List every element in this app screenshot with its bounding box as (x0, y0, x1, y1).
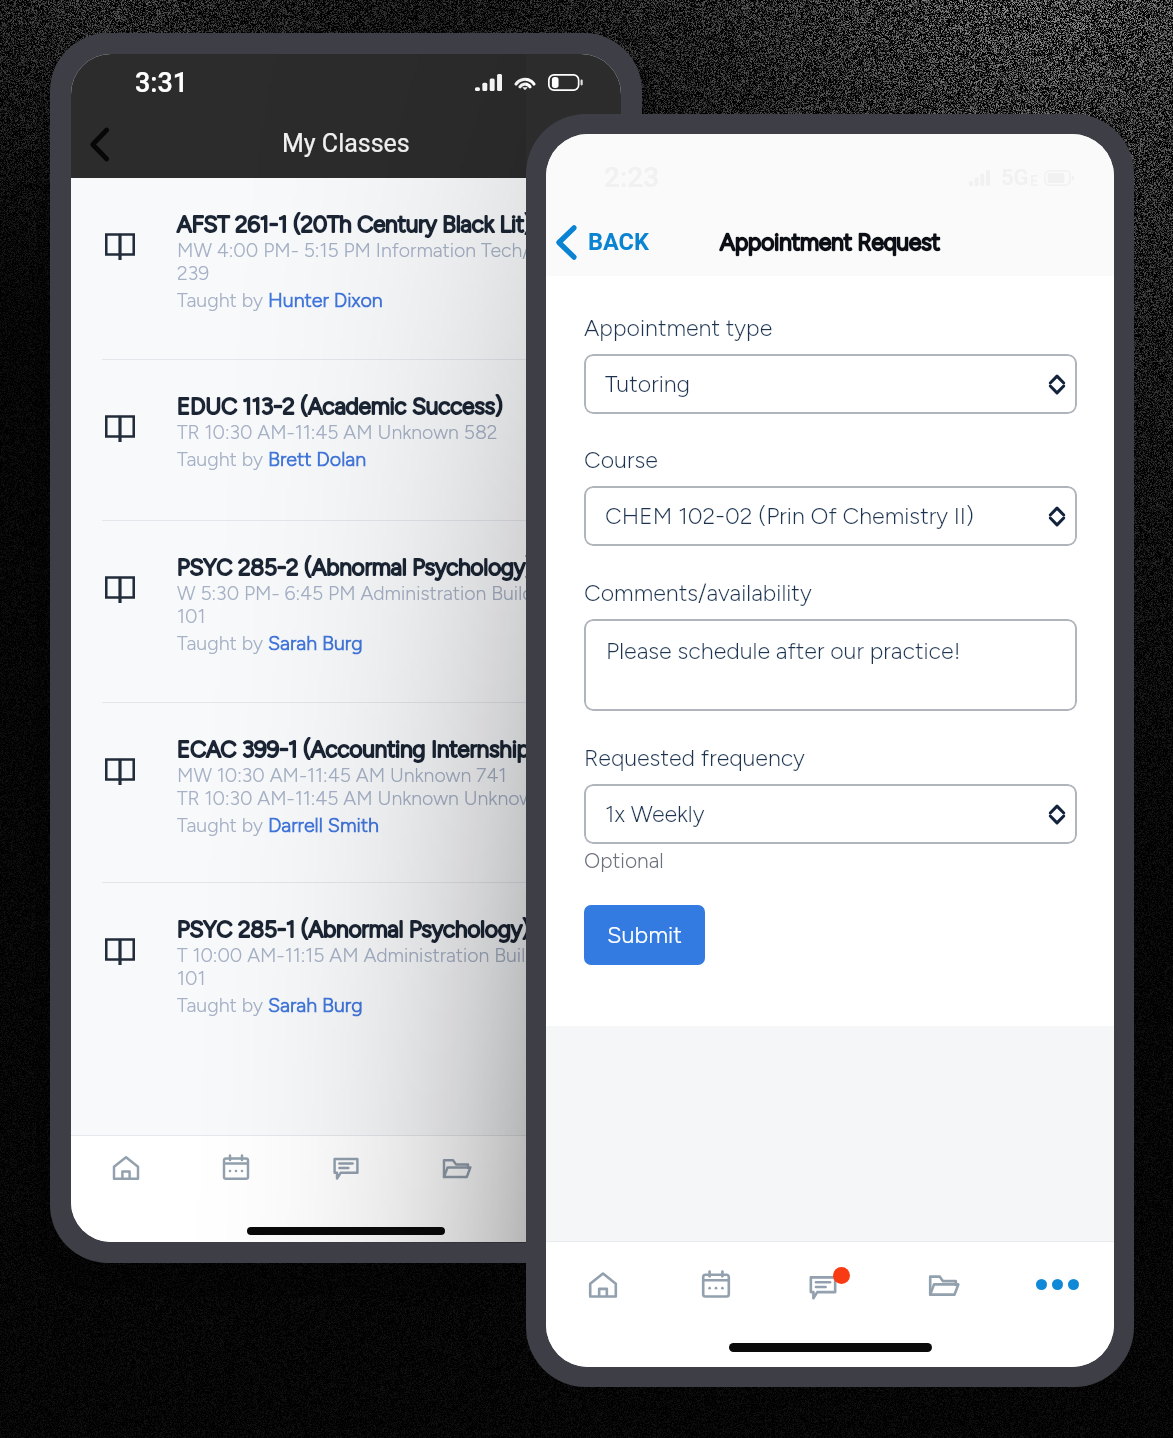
staticText: Appointment type (584, 314, 773, 342)
button[interactable]: More (1000, 1242, 1114, 1327)
button[interactable]: Tutoring (584, 354, 1077, 414)
button[interactable]: PSYC 285-2 (Abnormal Psychology) (71, 521, 621, 702)
staticText: AFST 261-1 (20Th Century Black Lit) (177, 211, 532, 238)
staticText: Appointment Request (720, 229, 941, 256)
staticText: Taught by Sarah Burg (177, 631, 363, 655)
staticText: E (1030, 173, 1038, 189)
button[interactable]: Files (886, 1242, 1000, 1327)
staticText: My Classes (282, 129, 410, 158)
staticText: 101 (177, 966, 206, 989)
button[interactable]: More (511, 1136, 621, 1200)
staticText: TR 10:30 AM-11:45 AM Unknown 582 (177, 420, 498, 443)
staticText: 239 (177, 261, 210, 284)
staticText: Optional (584, 848, 664, 873)
button[interactable]: BACK (556, 205, 649, 276)
staticText: Taught by Darrell Smith (177, 813, 380, 837)
staticText: AFST 261-1 (20Th Century Black Lit) (177, 211, 532, 238)
button[interactable]: Messages (772, 1242, 886, 1327)
button[interactable]: Files (401, 1136, 511, 1200)
staticText: PSYC 285-2 (Abnormal Psychology) (177, 554, 533, 581)
staticText: Appointment Request (720, 229, 941, 256)
button[interactable]: Please schedule after our practice! (584, 619, 1077, 711)
button[interactable]: Home (546, 1242, 659, 1327)
button[interactable]: 1x Weekly (584, 784, 1077, 844)
button[interactable]: Submit (584, 905, 705, 965)
staticText: PSYC 285-1 (Abnormal Psychology) (177, 916, 530, 943)
staticText: PSYC 285-2 (Abnormal Psychology) (177, 554, 533, 581)
staticText: 2:23 (604, 161, 660, 194)
button[interactable]: Calendar (659, 1242, 772, 1327)
staticText: BACK (588, 228, 649, 256)
staticText: Taught by Sarah Burg (177, 993, 363, 1017)
staticText: Taught by Brett Dolan (177, 447, 367, 471)
staticText: W 5:30 PM- 6:45 PM Administration Build (177, 581, 534, 604)
staticText: Tutoring (605, 370, 691, 398)
staticText: Please schedule after our practice! (606, 637, 961, 665)
button[interactable]: Back (71, 111, 128, 178)
staticText: TR 10:30 AM-11:45 AM Unknown Unknown (177, 786, 546, 809)
button[interactable]: Messages (291, 1136, 401, 1200)
button[interactable]: Home (71, 1136, 181, 1200)
button[interactable]: PSYC 285-1 (Abnormal Psychology) (71, 883, 621, 1083)
button[interactable]: EDUC 113-2 (Academic Success) (71, 360, 621, 520)
staticText: EDUC 113-2 (Academic Success) (177, 393, 503, 420)
staticText: Submit (607, 921, 682, 949)
staticText: MW 4:00 PM- 5:15 PM Information Tech/ (177, 238, 530, 261)
button[interactable]: CHEM 102-02 (Prin Of Chemistry II) (584, 486, 1077, 546)
staticText: EDUC 113-2 (Academic Success) (177, 393, 503, 420)
staticText: CHEM 102-02 (Prin Of Chemistry II) (605, 502, 974, 530)
staticText: ECAC 399-1 (Accounting Internship) (177, 736, 538, 763)
staticText: 101 (177, 604, 206, 627)
staticText: 5G (1001, 165, 1029, 191)
staticText: Taught by Hunter Dixon (177, 288, 383, 312)
staticText: Comments/availability (584, 579, 812, 607)
button[interactable]: ECAC 399-1 (Accounting Internship) (71, 703, 621, 882)
staticText: Course (584, 446, 658, 474)
staticText: 3:31 (135, 67, 189, 99)
staticText: 1x Weekly (605, 800, 705, 828)
staticText: MW 10:30 AM-11:45 AM Unknown 741 (177, 763, 507, 786)
staticText: ECAC 399-1 (Accounting Internship) (177, 736, 538, 763)
button[interactable]: Calendar (181, 1136, 291, 1200)
staticText: PSYC 285-1 (Abnormal Psychology) (177, 916, 530, 943)
staticText: Requested frequency (584, 744, 805, 772)
staticText: T 10:00 AM-11:15 AM Administration Buil (177, 943, 526, 966)
button[interactable]: AFST 261-1 (20Th Century Black Lit) (71, 178, 621, 359)
